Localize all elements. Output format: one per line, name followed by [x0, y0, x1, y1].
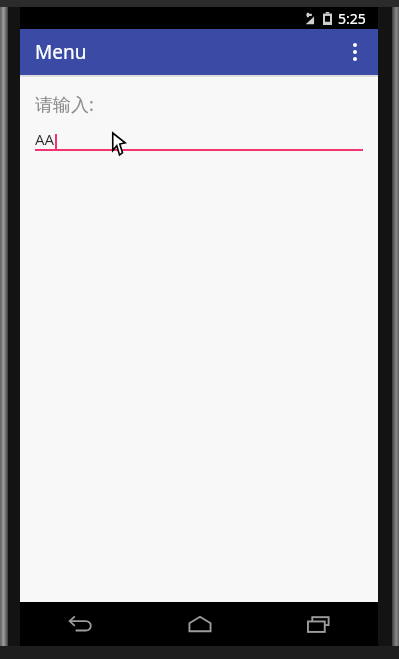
- button[interactable]: AA: [35, 125, 363, 149]
- button[interactable]: More options: [332, 29, 378, 75]
- button[interactable]: Back: [20, 602, 140, 646]
- staticText: 5:25: [338, 9, 366, 28]
- staticText: AA: [35, 129, 55, 149]
- staticText: Menu: [35, 39, 87, 65]
- staticText: 请输入:: [35, 92, 94, 117]
- button[interactable]: Home: [140, 602, 259, 646]
- button[interactable]: Recent apps: [259, 602, 378, 646]
